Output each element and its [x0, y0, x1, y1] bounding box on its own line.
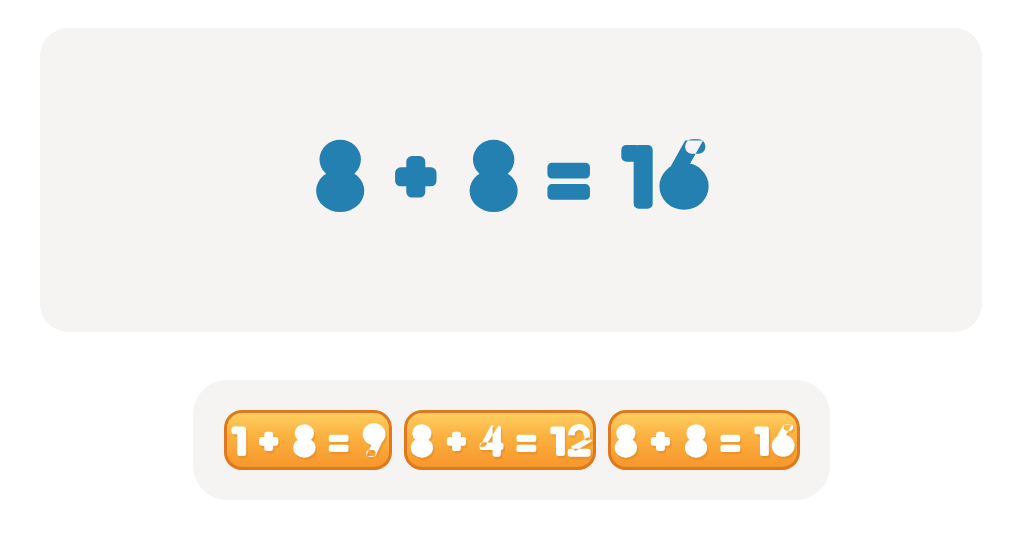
button[interactable] — [608, 410, 800, 470]
button[interactable] — [224, 410, 392, 470]
button[interactable] — [404, 410, 596, 470]
